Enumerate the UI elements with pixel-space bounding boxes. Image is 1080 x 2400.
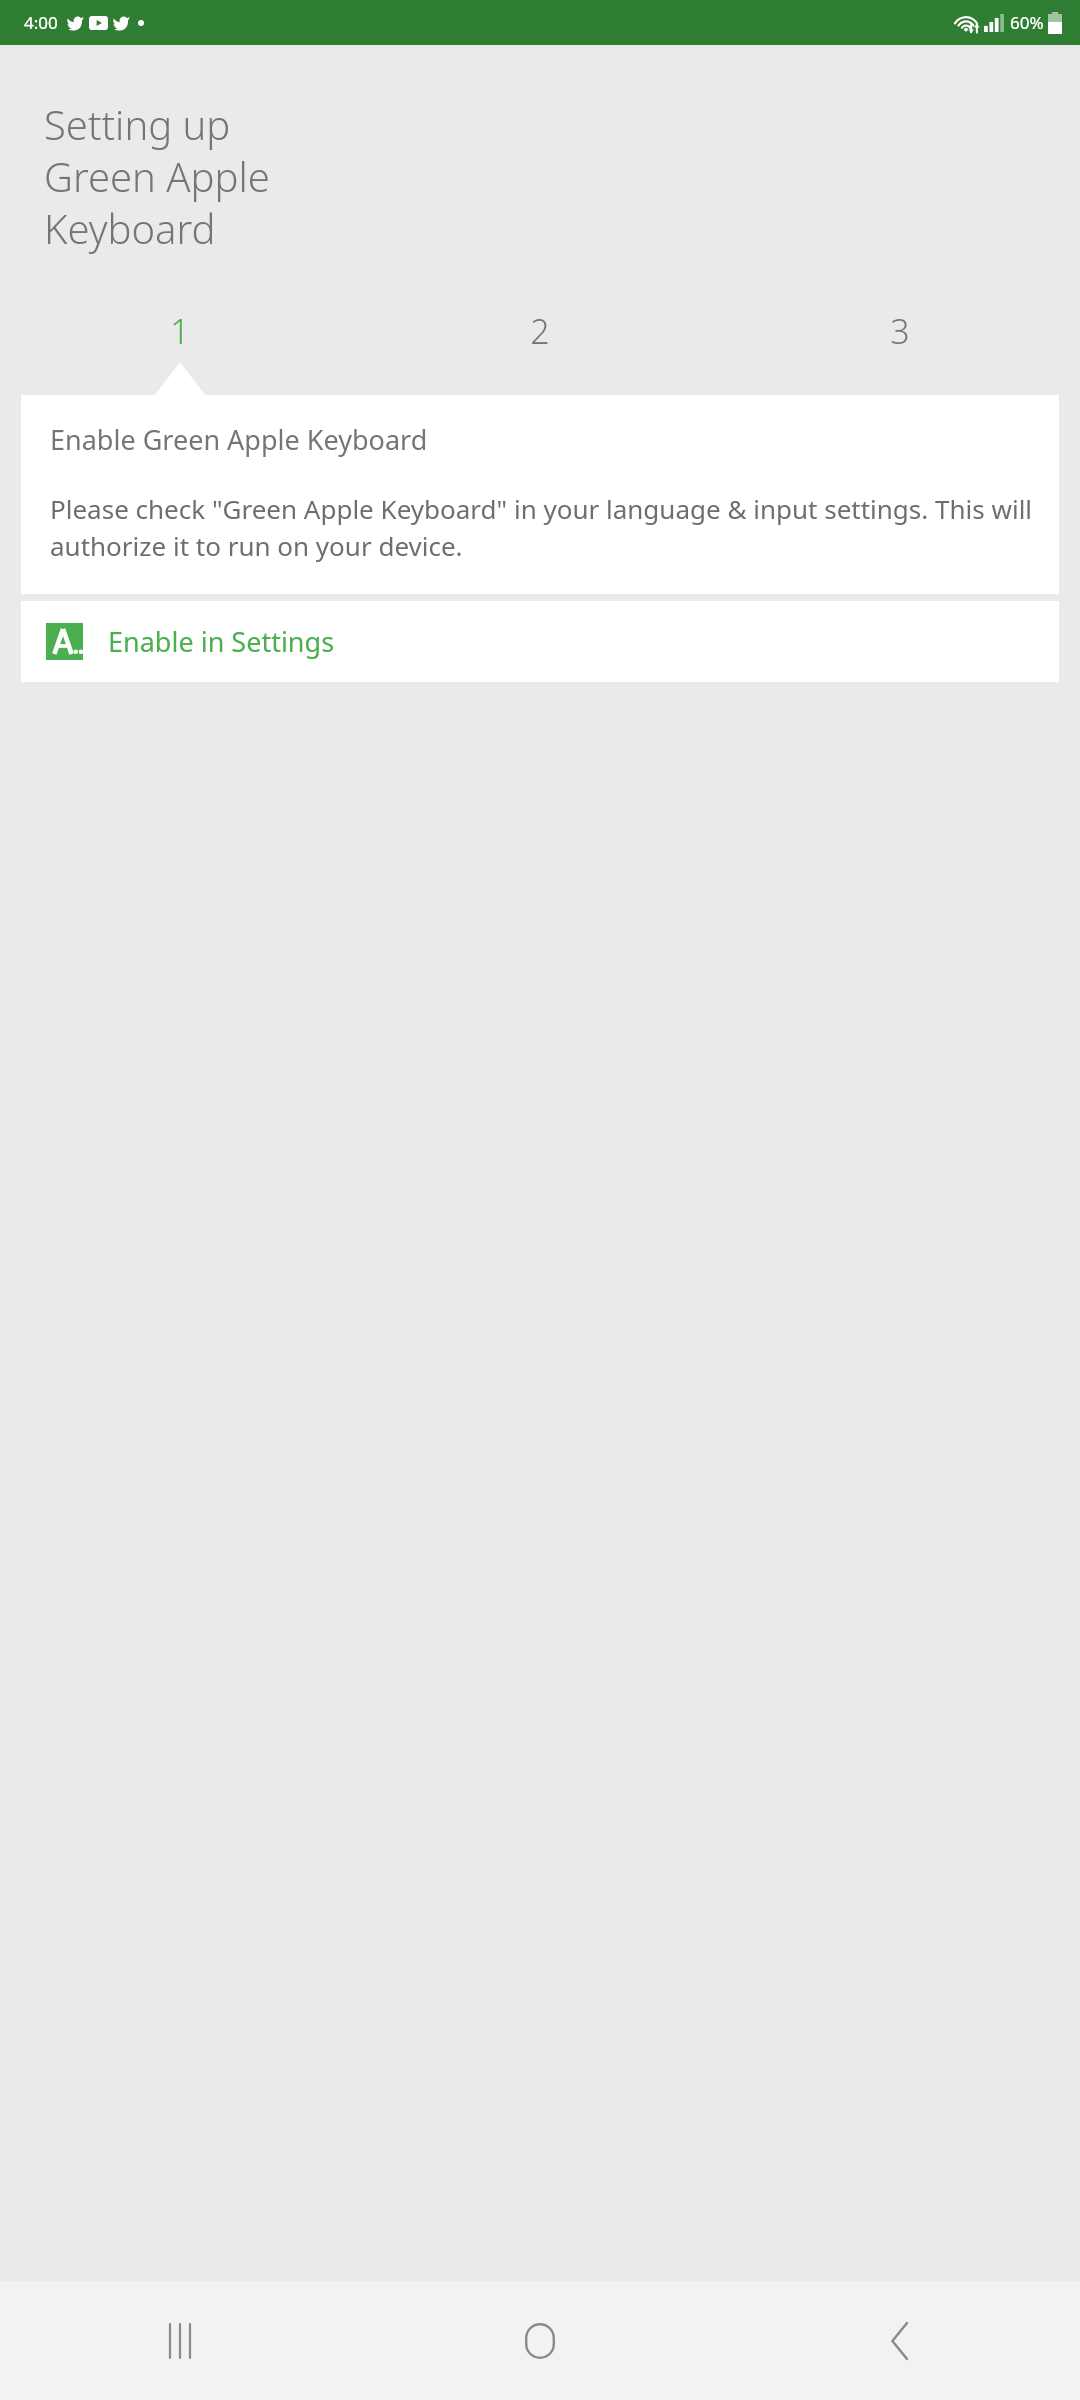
staticText: 2 (530, 308, 550, 354)
staticText: 4:00 (24, 11, 58, 34)
staticText: 1 (170, 308, 190, 354)
button[interactable]: 3 (720, 300, 1080, 362)
button[interactable]: Home (360, 2281, 720, 2400)
button[interactable]: 2 (360, 300, 720, 362)
other: Green Apple Keyboard (46, 623, 83, 660)
staticText: Setting up Green Apple Keyboard (44, 97, 270, 256)
button[interactable]: Green Apple Keyboard (21, 601, 1059, 682)
staticText: 3 (890, 308, 910, 354)
button[interactable]: 1 (0, 300, 360, 362)
staticText: 60% (1010, 11, 1044, 34)
button[interactable]: Recent apps (0, 2281, 360, 2400)
staticText: Please check "Green Apple Keyboard" in y… (50, 491, 1039, 564)
staticText: Enable Green Apple Keyboard (50, 421, 428, 458)
button[interactable]: Back (720, 2281, 1080, 2400)
staticText: Enable in Settings (108, 623, 335, 660)
